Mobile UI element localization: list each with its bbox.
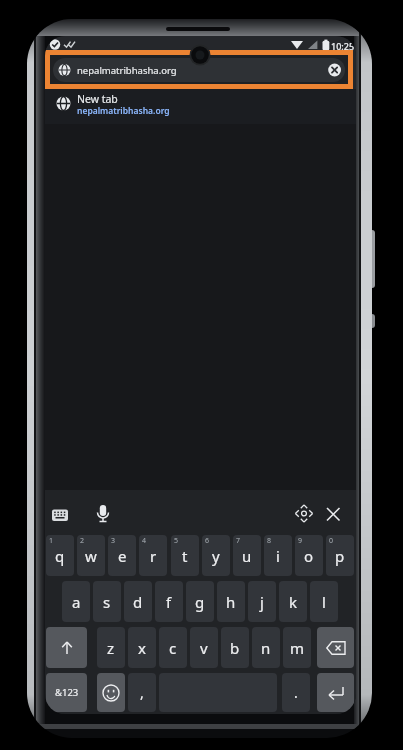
- staticText: n: [261, 638, 271, 658]
- staticText: 5: [174, 536, 179, 546]
- button[interactable]: k: [279, 581, 307, 622]
- staticText: 0: [329, 536, 334, 546]
- button[interactable]: u: [233, 535, 261, 576]
- staticText: b: [230, 638, 240, 658]
- staticText: l: [322, 592, 326, 612]
- button[interactable]: [48, 501, 72, 525]
- button[interactable]: f: [155, 581, 183, 622]
- button[interactable]: &123: [46, 673, 87, 712]
- button[interactable]: [321, 501, 345, 525]
- staticText: ,: [140, 683, 144, 702]
- staticText: r: [150, 546, 157, 566]
- button[interactable]: [292, 501, 316, 525]
- button[interactable]: [321, 58, 345, 82]
- button[interactable]: i: [264, 535, 292, 576]
- staticText: 3: [111, 536, 116, 546]
- button[interactable]: [92, 499, 114, 527]
- staticText: u: [242, 546, 252, 566]
- button[interactable]: l: [310, 581, 338, 622]
- button[interactable]: d: [124, 581, 152, 622]
- staticText: New tab: [77, 92, 118, 106]
- button[interactable]: x: [128, 627, 156, 668]
- staticText: x: [138, 638, 146, 658]
- button[interactable]: n: [252, 627, 280, 668]
- staticText: f: [166, 592, 172, 612]
- button[interactable]: c: [159, 627, 187, 668]
- button[interactable]: w: [77, 535, 105, 576]
- button[interactable]: [317, 627, 354, 668]
- button[interactable]: t: [171, 535, 199, 576]
- button[interactable]: s: [93, 581, 121, 622]
- staticText: 1: [49, 536, 54, 546]
- button[interactable]: [317, 673, 354, 712]
- staticText: z: [107, 638, 115, 658]
- staticText: d: [133, 592, 143, 612]
- button[interactable]: z: [97, 627, 125, 668]
- staticText: v: [200, 638, 208, 658]
- button[interactable]: o: [295, 535, 323, 576]
- staticText: a: [72, 592, 81, 612]
- button[interactable]: a: [62, 581, 90, 622]
- staticText: .: [294, 683, 298, 702]
- staticText: 7: [236, 536, 241, 546]
- button[interactable]: b: [221, 627, 249, 668]
- staticText: 6: [205, 536, 210, 546]
- button[interactable]: v: [190, 627, 218, 668]
- staticText: nepalmatribhasha.org: [77, 64, 177, 77]
- staticText: 2: [80, 536, 85, 546]
- button[interactable]: ,: [128, 673, 156, 712]
- staticText: c: [169, 638, 177, 658]
- staticText: y: [212, 546, 220, 566]
- staticText: t: [182, 546, 188, 566]
- button[interactable]: e: [108, 535, 136, 576]
- button[interactable]: r: [139, 535, 167, 576]
- button[interactable]: m: [283, 627, 311, 668]
- staticText: j: [260, 592, 264, 612]
- button[interactable]: g: [186, 581, 214, 622]
- button[interactable]: p: [326, 535, 354, 576]
- staticText: i: [276, 546, 280, 566]
- button[interactable]: h: [217, 581, 245, 622]
- staticText: o: [304, 546, 314, 566]
- staticText: w: [85, 546, 97, 566]
- button[interactable]: q: [46, 535, 74, 576]
- button[interactable]: [46, 627, 87, 668]
- button[interactable]: nepalmatribhasha.org: [53, 58, 345, 82]
- staticText: m: [290, 638, 305, 658]
- staticText: e: [118, 546, 127, 566]
- staticText: q: [55, 546, 65, 566]
- staticText: nepalmatribhasha.org: [77, 105, 170, 117]
- staticText: 4: [142, 536, 147, 546]
- button[interactable]: .: [282, 673, 310, 712]
- button[interactable]: j: [248, 581, 276, 622]
- button[interactable]: New tab: [45, 89, 356, 124]
- staticText: &123: [55, 686, 79, 699]
- staticText: 8: [267, 536, 272, 546]
- staticText: p: [335, 546, 345, 566]
- button[interactable]: y: [202, 535, 230, 576]
- staticText: 10:25: [331, 40, 355, 52]
- staticText: s: [103, 592, 111, 612]
- staticText: 9: [298, 536, 303, 546]
- staticText: h: [226, 592, 236, 612]
- staticText: k: [289, 592, 298, 612]
- staticText: g: [195, 592, 205, 612]
- button[interactable]: [97, 673, 125, 712]
